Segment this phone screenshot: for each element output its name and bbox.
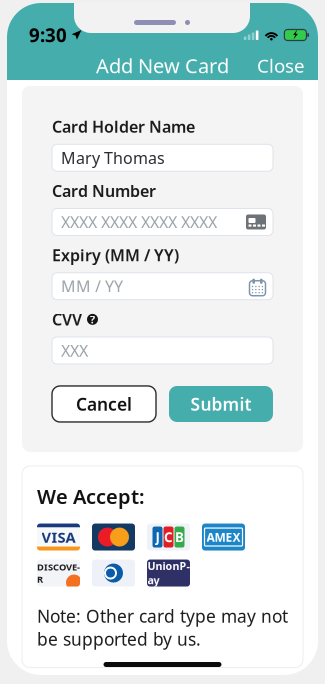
staticText: Card Holder Name <box>52 116 195 137</box>
staticText: J <box>155 528 159 546</box>
staticText: Submit <box>190 392 251 415</box>
button[interactable]: Submit <box>169 386 273 422</box>
staticText: Expiry (MM / YY) <box>52 244 179 266</box>
staticText: XXXX XXXX XXXX XXXX <box>61 211 217 233</box>
staticText: AMEX <box>206 529 240 545</box>
staticText: We Accept: <box>37 483 145 510</box>
staticText: B <box>175 528 184 546</box>
staticText: VISA <box>41 527 75 547</box>
staticText: ? <box>90 312 95 326</box>
staticText: XXX <box>61 340 88 361</box>
staticText: UnionPay <box>147 559 189 587</box>
staticText: DISCOVER <box>37 561 80 585</box>
button[interactable]: Close <box>244 46 318 85</box>
staticText: Note: Other card type may not be support… <box>37 605 288 651</box>
staticText: Card Number <box>52 180 156 201</box>
staticText: MM / YY <box>61 276 123 297</box>
staticText: Close <box>257 53 305 78</box>
staticText: 9:30 <box>29 23 67 47</box>
button[interactable]: Cancel <box>52 386 156 422</box>
staticText: CVV <box>52 309 82 330</box>
staticText: C <box>164 528 173 546</box>
staticText: Mary Thomas <box>61 147 165 168</box>
staticText: Add New Card <box>96 52 229 79</box>
staticText: Cancel <box>76 392 132 415</box>
